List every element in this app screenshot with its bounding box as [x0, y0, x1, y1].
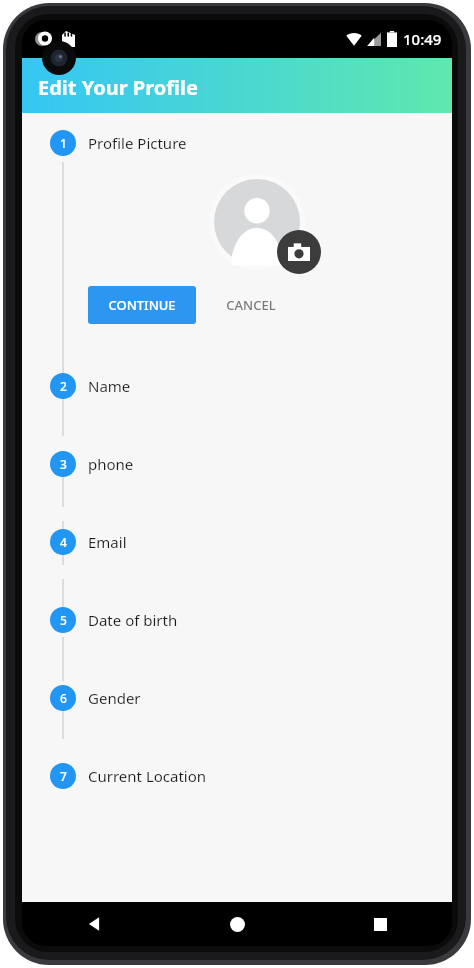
button[interactable]: 4 — [22, 522, 452, 561]
button[interactable]: Recent apps — [309, 902, 452, 946]
staticText: phone — [88, 454, 134, 474]
button[interactable]: 2 — [22, 366, 452, 405]
button[interactable]: 7 — [22, 756, 452, 795]
button[interactable]: 3 — [22, 444, 452, 483]
staticText: 2 — [60, 378, 67, 394]
staticText: 4 — [60, 534, 67, 550]
button[interactable]: 1 — [22, 123, 452, 162]
button[interactable]: Back — [22, 902, 166, 946]
button[interactable]: CANCEL — [208, 286, 294, 324]
staticText: 3 — [60, 456, 67, 472]
staticText: 1 — [60, 135, 67, 151]
staticText: Name — [88, 376, 131, 396]
staticText: CANCEL — [226, 296, 276, 314]
staticText: Current Location — [88, 766, 207, 786]
staticText: Email — [88, 532, 127, 552]
staticText: Edit Your Profile — [38, 74, 198, 101]
staticText: 5 — [60, 612, 67, 628]
button[interactable]: 6 — [22, 678, 452, 717]
staticText: Gender — [88, 688, 141, 708]
staticText: 10:49 — [403, 29, 442, 49]
staticText: 7 — [60, 768, 67, 784]
button[interactable]: Home — [166, 902, 309, 946]
staticText: CONTINUE — [108, 296, 176, 314]
staticText: Profile Picture — [88, 133, 187, 153]
button[interactable]: Change profile photo — [277, 230, 321, 274]
button[interactable]: CONTINUE — [88, 286, 196, 324]
button[interactable]: 5 — [22, 600, 452, 639]
staticText: 6 — [60, 690, 67, 706]
staticText: Date of birth — [88, 610, 178, 630]
